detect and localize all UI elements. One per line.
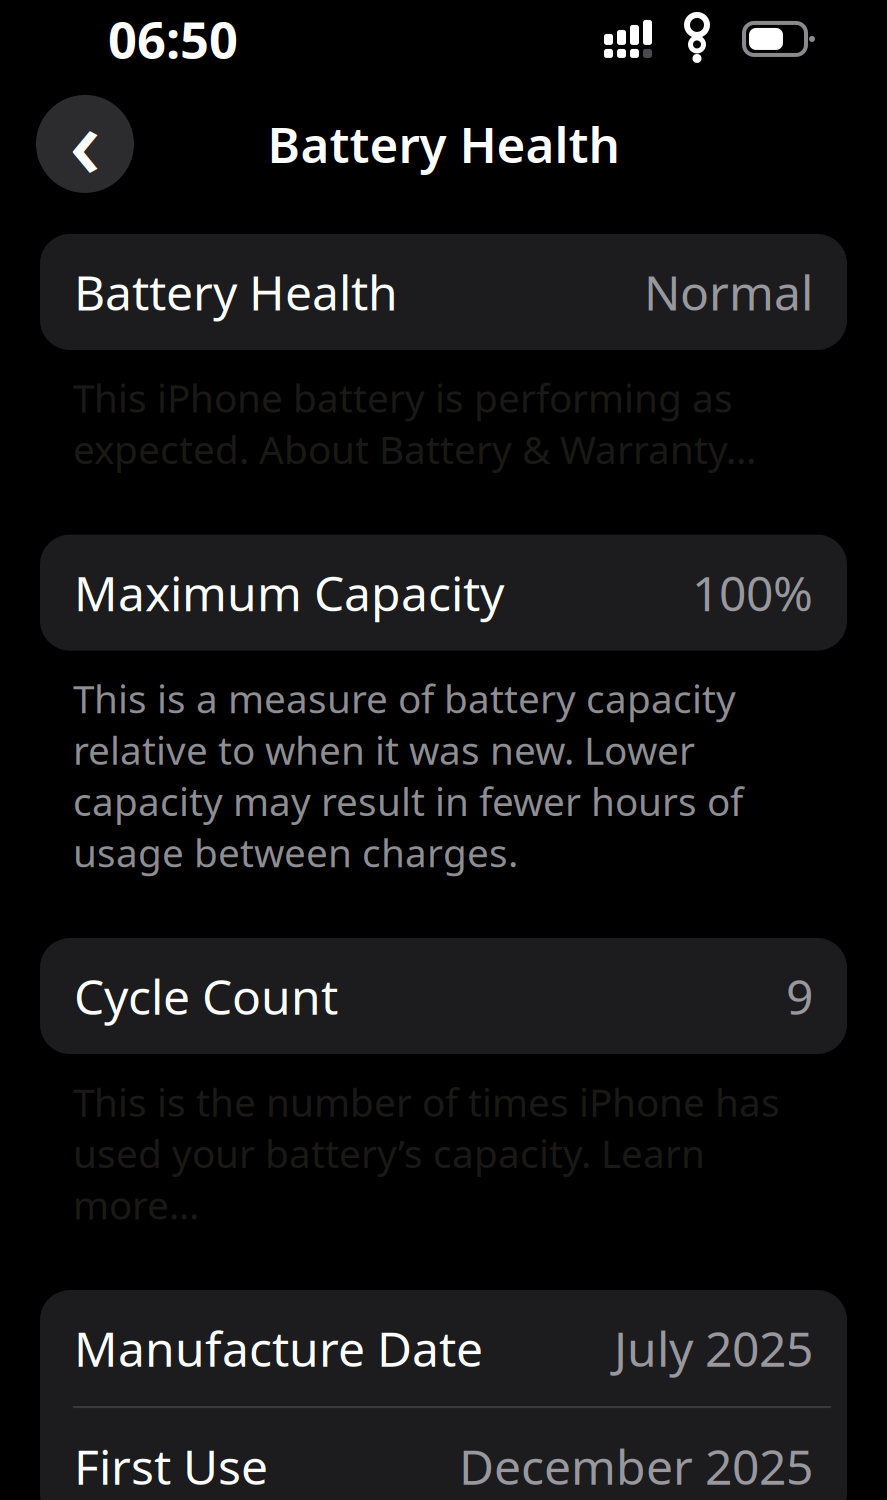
staticText: July 2025 [614, 1316, 813, 1380]
staticText: ‹ [69, 74, 101, 205]
staticText: 100% [692, 561, 813, 624]
staticText: Battery Health [74, 260, 398, 324]
staticText: 9 [786, 964, 813, 1028]
button[interactable]: Back [36, 74, 134, 213]
staticText: This iPhone battery is performing as exp… [73, 372, 756, 475]
staticText: Normal [644, 260, 813, 324]
button[interactable]: Battery Health [40, 234, 847, 350]
staticText: This is a measure of battery capacity re… [73, 673, 743, 878]
button[interactable]: First Use [40, 1408, 847, 1500]
staticText: December 2025 [459, 1434, 813, 1498]
staticText: Maximum Capacity [74, 561, 504, 624]
staticText: Manufacture Date [74, 1316, 483, 1380]
staticText: Cycle Count [74, 964, 338, 1028]
button[interactable]: Maximum Capacity [40, 535, 847, 651]
button[interactable]: Cycle Count [40, 938, 847, 1054]
staticText: This is the number of times iPhone has u… [73, 1076, 780, 1230]
staticText: First Use [74, 1434, 268, 1498]
staticText: 06:50 [108, 5, 238, 73]
button[interactable]: Manufacture Date [40, 1290, 847, 1406]
staticText: Battery Health [267, 111, 619, 177]
